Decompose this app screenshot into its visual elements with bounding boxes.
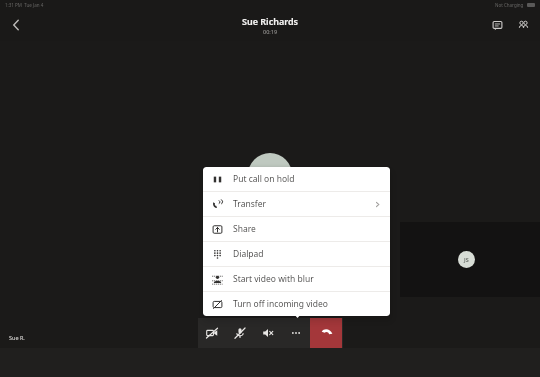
staticText: 00:19 (263, 28, 278, 35)
staticText: Turn off incoming video (233, 298, 328, 310)
staticText: Not Charging (495, 2, 524, 8)
staticText: 1:31 PM Tue Jan 4 (5, 2, 44, 8)
button[interactable]: Put call on hold (203, 167, 390, 191)
button[interactable]: Unmute (226, 318, 254, 348)
button[interactable]: More options (282, 318, 310, 348)
button[interactable]: Turn camera on (198, 318, 226, 348)
staticText: Dialpad (233, 248, 264, 260)
button[interactable]: Back (0, 9, 32, 41)
button[interactable]: Transfer (203, 192, 390, 216)
button[interactable]: Participants (512, 14, 534, 36)
staticText: Sue Richards (242, 15, 298, 27)
button[interactable]: Start video with blur (203, 267, 390, 291)
staticText: Share (233, 223, 256, 235)
staticText: Put call on hold (233, 173, 295, 185)
button[interactable]: Share (203, 217, 390, 241)
button[interactable]: Chat (486, 14, 508, 36)
button[interactable]: Hang up (310, 318, 342, 348)
staticText: JS (464, 256, 469, 263)
button[interactable]: Turn off incoming video (203, 292, 390, 316)
staticText: Start video with blur (233, 273, 314, 285)
button[interactable]: Dialpad (203, 242, 390, 266)
staticText: Sue R. (9, 334, 25, 341)
staticText: Transfer (233, 198, 266, 210)
button[interactable]: Speaker off (254, 318, 282, 348)
